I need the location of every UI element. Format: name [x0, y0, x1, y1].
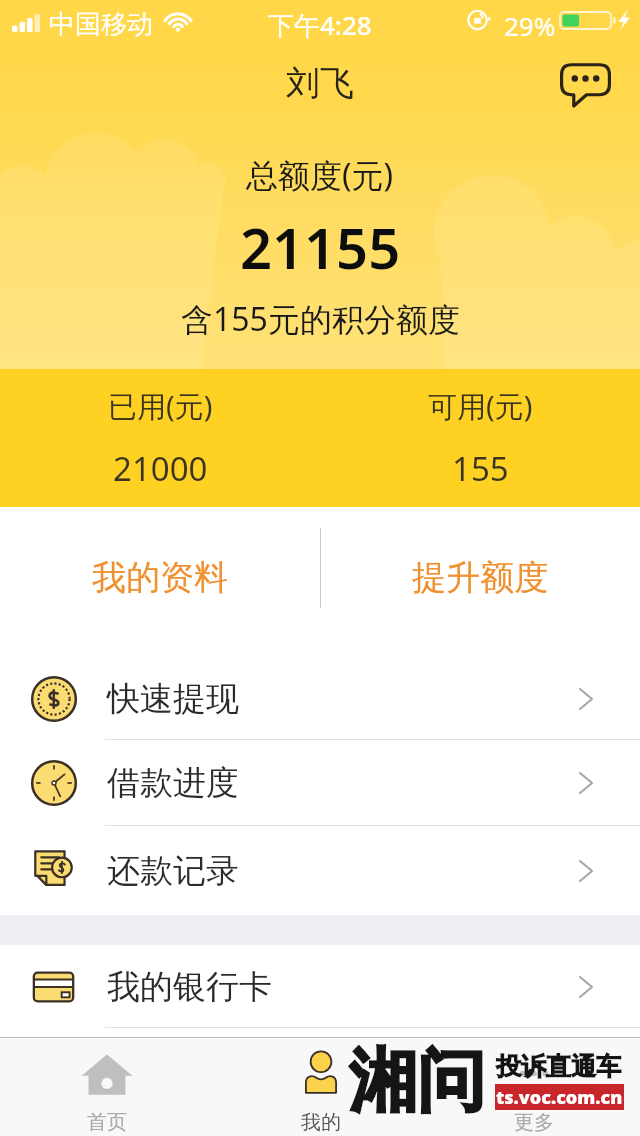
staticText: 21000	[113, 446, 208, 491]
button[interactable]: 首页	[0, 1038, 214, 1136]
staticText: 155	[452, 446, 509, 491]
staticText: ts.voc.com.cn	[496, 1085, 623, 1110]
staticText: 我的资料	[92, 556, 228, 599]
staticText: 含155元的积分额度	[181, 297, 460, 341]
staticText: 我的银行卡	[107, 966, 272, 1008]
staticText: 已用(元)	[108, 386, 213, 426]
button[interactable]: 我的资料	[0, 507, 320, 657]
button[interactable]: 快速提现	[0, 657, 640, 740]
staticText: 更多	[514, 1110, 554, 1135]
button[interactable]: 消息	[560, 59, 611, 107]
button[interactable]: 我的银行卡	[0, 945, 640, 1028]
button[interactable]: 提升额度	[320, 507, 640, 657]
staticText: 首页	[87, 1110, 127, 1135]
staticText: 提升额度	[412, 556, 548, 599]
staticText: 中国移动	[49, 8, 153, 41]
staticText: 投诉直通车	[496, 1051, 621, 1082]
staticText: 我的	[301, 1110, 341, 1135]
staticText: 可用(元)	[428, 386, 533, 426]
staticText: 还款记录	[107, 850, 239, 892]
staticText: 快速提现	[107, 678, 239, 720]
staticText: 21155	[240, 209, 401, 285]
button[interactable]: 借款进度	[0, 740, 640, 826]
button[interactable]: 更多	[427, 1038, 640, 1136]
staticText: 29%	[504, 8, 556, 43]
button[interactable]: 我的	[214, 1038, 427, 1136]
staticText: 借款进度	[107, 762, 239, 804]
staticText: 湘问	[349, 1039, 485, 1125]
staticText: 总额度(元)	[246, 153, 394, 197]
staticText: 下午4:28	[268, 7, 372, 43]
staticText: 刘飞	[286, 62, 354, 105]
button[interactable]: 还款记录	[0, 826, 640, 915]
